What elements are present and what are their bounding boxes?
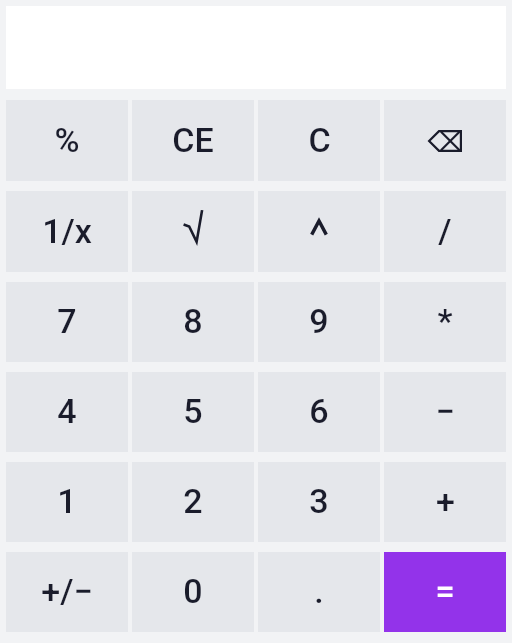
staticText: 7 — [57, 301, 77, 341]
button[interactable]: 0 — [132, 552, 254, 632]
button[interactable]: 5 — [132, 372, 254, 452]
staticText: 6 — [309, 391, 329, 431]
button[interactable]: 3 — [258, 462, 380, 542]
staticText: . — [314, 571, 324, 611]
button[interactable]: / — [384, 191, 506, 272]
staticText: % — [54, 120, 80, 160]
staticText: CE — [172, 120, 214, 160]
staticText: 8 — [183, 301, 203, 341]
button[interactable]: 1/x — [6, 191, 128, 272]
button[interactable]: +/− — [6, 552, 128, 632]
button[interactable]: Power — [258, 191, 380, 272]
staticText: 4 — [57, 391, 77, 431]
button[interactable]: Backspace — [384, 100, 506, 181]
button[interactable]: = — [384, 552, 506, 632]
button[interactable]: C — [258, 100, 380, 181]
staticText: 1/x — [42, 211, 92, 251]
staticText: 0 — [183, 571, 203, 611]
button[interactable]: − — [384, 372, 506, 452]
staticText: C — [308, 120, 331, 160]
staticText: = — [435, 571, 455, 611]
button[interactable]: . — [258, 552, 380, 632]
button[interactable]: 9 — [258, 282, 380, 362]
staticText: / — [438, 211, 452, 251]
button[interactable]: % — [6, 100, 128, 181]
button[interactable]: CE — [132, 100, 254, 181]
button[interactable]: 7 — [6, 282, 128, 362]
staticText: + — [436, 481, 455, 521]
staticText: +/− — [41, 571, 93, 611]
staticText: 1 — [57, 481, 77, 521]
button[interactable]: 8 — [132, 282, 254, 362]
button[interactable]: 1 — [6, 462, 128, 542]
button[interactable]: 2 — [132, 462, 254, 542]
staticText: * — [437, 301, 453, 341]
button[interactable]: * — [384, 282, 506, 362]
staticText: 9 — [309, 301, 329, 341]
button[interactable]: Square root — [132, 191, 254, 272]
button[interactable]: + — [384, 462, 506, 542]
staticText: − — [435, 391, 455, 431]
staticText: 3 — [309, 481, 329, 521]
staticText: 2 — [183, 481, 203, 521]
staticText: 5 — [183, 391, 203, 431]
button[interactable]: 4 — [6, 372, 128, 452]
button[interactable]: 6 — [258, 372, 380, 452]
